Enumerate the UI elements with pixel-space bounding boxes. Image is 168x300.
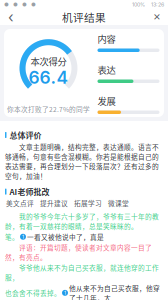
staticText: 1 <box>22 233 24 240</box>
staticText: 一看又被他说中了，真是 <box>27 232 104 242</box>
staticText: ‹ <box>8 8 14 26</box>
button[interactable]: 美文点评 <box>5 199 35 208</box>
staticText: 微课堂 <box>108 198 129 208</box>
staticText: 总体评价 <box>9 129 41 141</box>
staticText: 也会舍不得丢掉。 <box>5 288 61 298</box>
staticText: AI老师批改 <box>9 186 49 197</box>
staticText: 评语：开篇切题，使读者对文章内容一目了然，有亮点。 <box>5 243 152 262</box>
staticText: 100% 13:26 <box>132 1 164 8</box>
staticText: 笔。 <box>5 232 19 242</box>
button[interactable]: 返回 <box>4 10 18 24</box>
staticText: 内容 <box>97 32 115 45</box>
staticText: 提升建议 <box>40 198 68 208</box>
staticText: 文章主题明确，结构完整，表达通顺。语言不够通畅，句意有些含混模糊。你若是能根据自… <box>5 142 159 181</box>
button[interactable]: 微课堂 <box>107 199 130 208</box>
staticText: 爷爷他从来不为自己买衣服，就连他穿的工作服， <box>5 263 159 282</box>
staticText: ● ● ● ● <box>4 1 36 8</box>
staticText: 1 <box>64 290 66 296</box>
staticText: 表达 <box>97 63 115 76</box>
staticText: 66.4 <box>28 67 68 88</box>
staticText: 你本次打败了22.7%的同学 <box>7 104 90 114</box>
staticText: 我的爷爷今年六十多岁了，爷爷有三十年的教龄，有着一双慈祥的眼睛，总是笑眯眯的。 <box>5 212 159 231</box>
staticText: 他从来不为自己买衣服，他穿了十几年，大 <box>69 283 160 300</box>
button[interactable]: 拓展学习 <box>73 199 103 208</box>
staticText: 拓展学习 <box>74 198 102 208</box>
staticText: 美文点评 <box>6 198 34 208</box>
staticText: 机评结果 <box>62 9 106 25</box>
staticText: ✕ <box>153 12 161 22</box>
staticText: 发展 <box>97 94 115 107</box>
staticText: 本次得分 <box>30 54 66 68</box>
button[interactable]: 关闭 <box>150 10 164 24</box>
button[interactable]: 提升建议 <box>39 199 69 208</box>
